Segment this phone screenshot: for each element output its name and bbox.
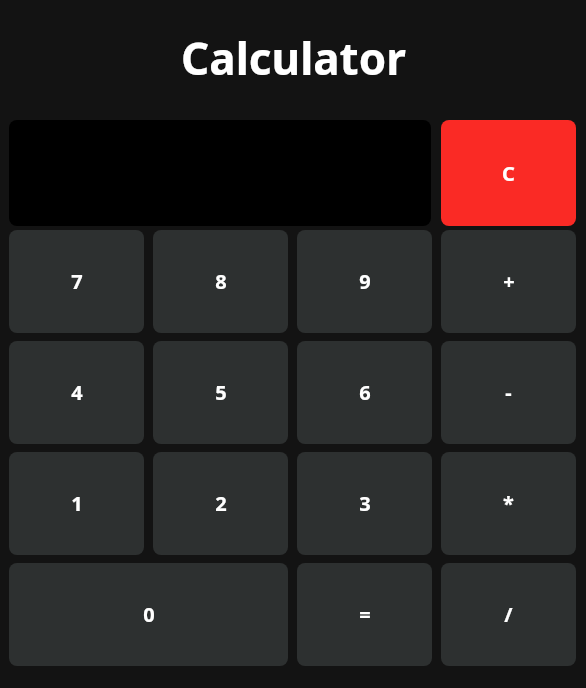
staticText: + [503,268,515,295]
staticText: 7 [71,268,83,295]
staticText: - [505,379,512,406]
button[interactable]: 4 [9,341,144,444]
staticText: = [359,601,371,628]
staticText: / [504,601,513,628]
button[interactable]: C [441,120,576,226]
button[interactable]: 1 [9,452,144,555]
staticText: C [502,160,515,187]
button[interactable]: 0 [9,563,288,666]
button[interactable]: + [441,230,576,333]
staticText: 1 [71,490,83,517]
button[interactable]: 5 [153,341,288,444]
staticText: Calculator [181,28,406,88]
staticText: 2 [215,490,227,517]
staticText: 3 [359,490,371,517]
button[interactable]: * [441,452,576,555]
button[interactable]: 2 [153,452,288,555]
staticText: * [503,490,514,517]
button[interactable]: 3 [297,452,432,555]
button[interactable]: 8 [153,230,288,333]
button[interactable]: 9 [297,230,432,333]
button[interactable]: - [441,341,576,444]
button[interactable]: 6 [297,341,432,444]
button[interactable]: = [297,563,432,666]
staticText: 0 [143,601,155,628]
staticText: 8 [215,268,227,295]
staticText: 5 [215,379,227,406]
button[interactable]: 7 [9,230,144,333]
staticText: 6 [359,379,371,406]
button[interactable]: / [441,563,576,666]
staticText: 9 [359,268,371,295]
staticText: 4 [71,379,83,406]
